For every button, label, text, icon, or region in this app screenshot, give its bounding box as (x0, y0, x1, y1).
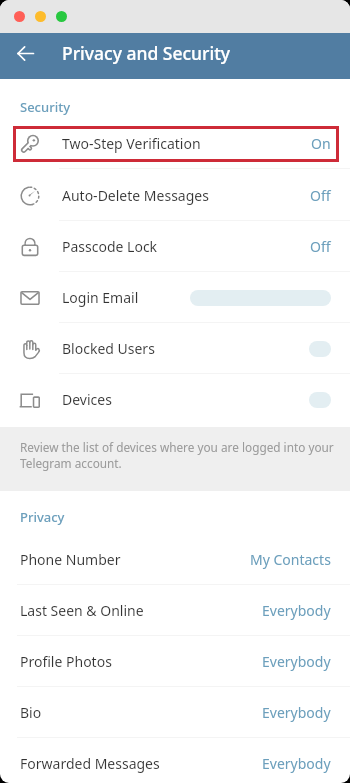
button[interactable]: Bio (0, 687, 350, 738)
staticText: On (311, 134, 331, 153)
staticText: Login Email (62, 288, 139, 307)
staticText: Everybody (262, 652, 331, 671)
button[interactable]: Phone Number (0, 534, 350, 585)
staticText: Security (20, 98, 70, 116)
staticText: Devices (62, 390, 112, 409)
button[interactable]: Profile Photos (0, 636, 350, 687)
button[interactable]: Blocked Users (0, 323, 350, 374)
staticText: Everybody (262, 601, 331, 620)
staticText: Review the list of devices where you are… (20, 439, 339, 472)
staticText: Phone Number (20, 550, 121, 569)
staticText: Profile Photos (20, 652, 112, 671)
button[interactable]: Passcode Lock (0, 221, 350, 272)
staticText: My Contacts (250, 550, 331, 569)
button[interactable]: Last Seen & Online (0, 585, 350, 636)
staticText: Bio (20, 703, 42, 722)
staticText: Everybody (262, 703, 331, 722)
staticText: Privacy and Security (62, 41, 231, 65)
staticText: Auto-Delete Messages (62, 186, 209, 205)
staticText: Everybody (262, 754, 331, 773)
staticText: Off (310, 237, 331, 256)
staticText: Two-Step Verification (62, 134, 201, 153)
button[interactable]: Back (9, 37, 41, 69)
button[interactable]: Auto-Delete Messages (0, 170, 350, 221)
button[interactable]: Two-Step Verification (0, 118, 350, 169)
staticText: Passcode Lock (62, 237, 158, 256)
staticText: Forwarded Messages (20, 754, 160, 773)
staticText: Privacy (20, 508, 65, 526)
staticText: Blocked Users (62, 339, 155, 358)
button[interactable]: Forwarded Messages (0, 738, 350, 783)
staticText: Last Seen & Online (20, 601, 144, 620)
button[interactable]: Login Email (0, 272, 350, 323)
staticText: Off (310, 186, 331, 205)
button[interactable]: Devices (0, 374, 350, 425)
